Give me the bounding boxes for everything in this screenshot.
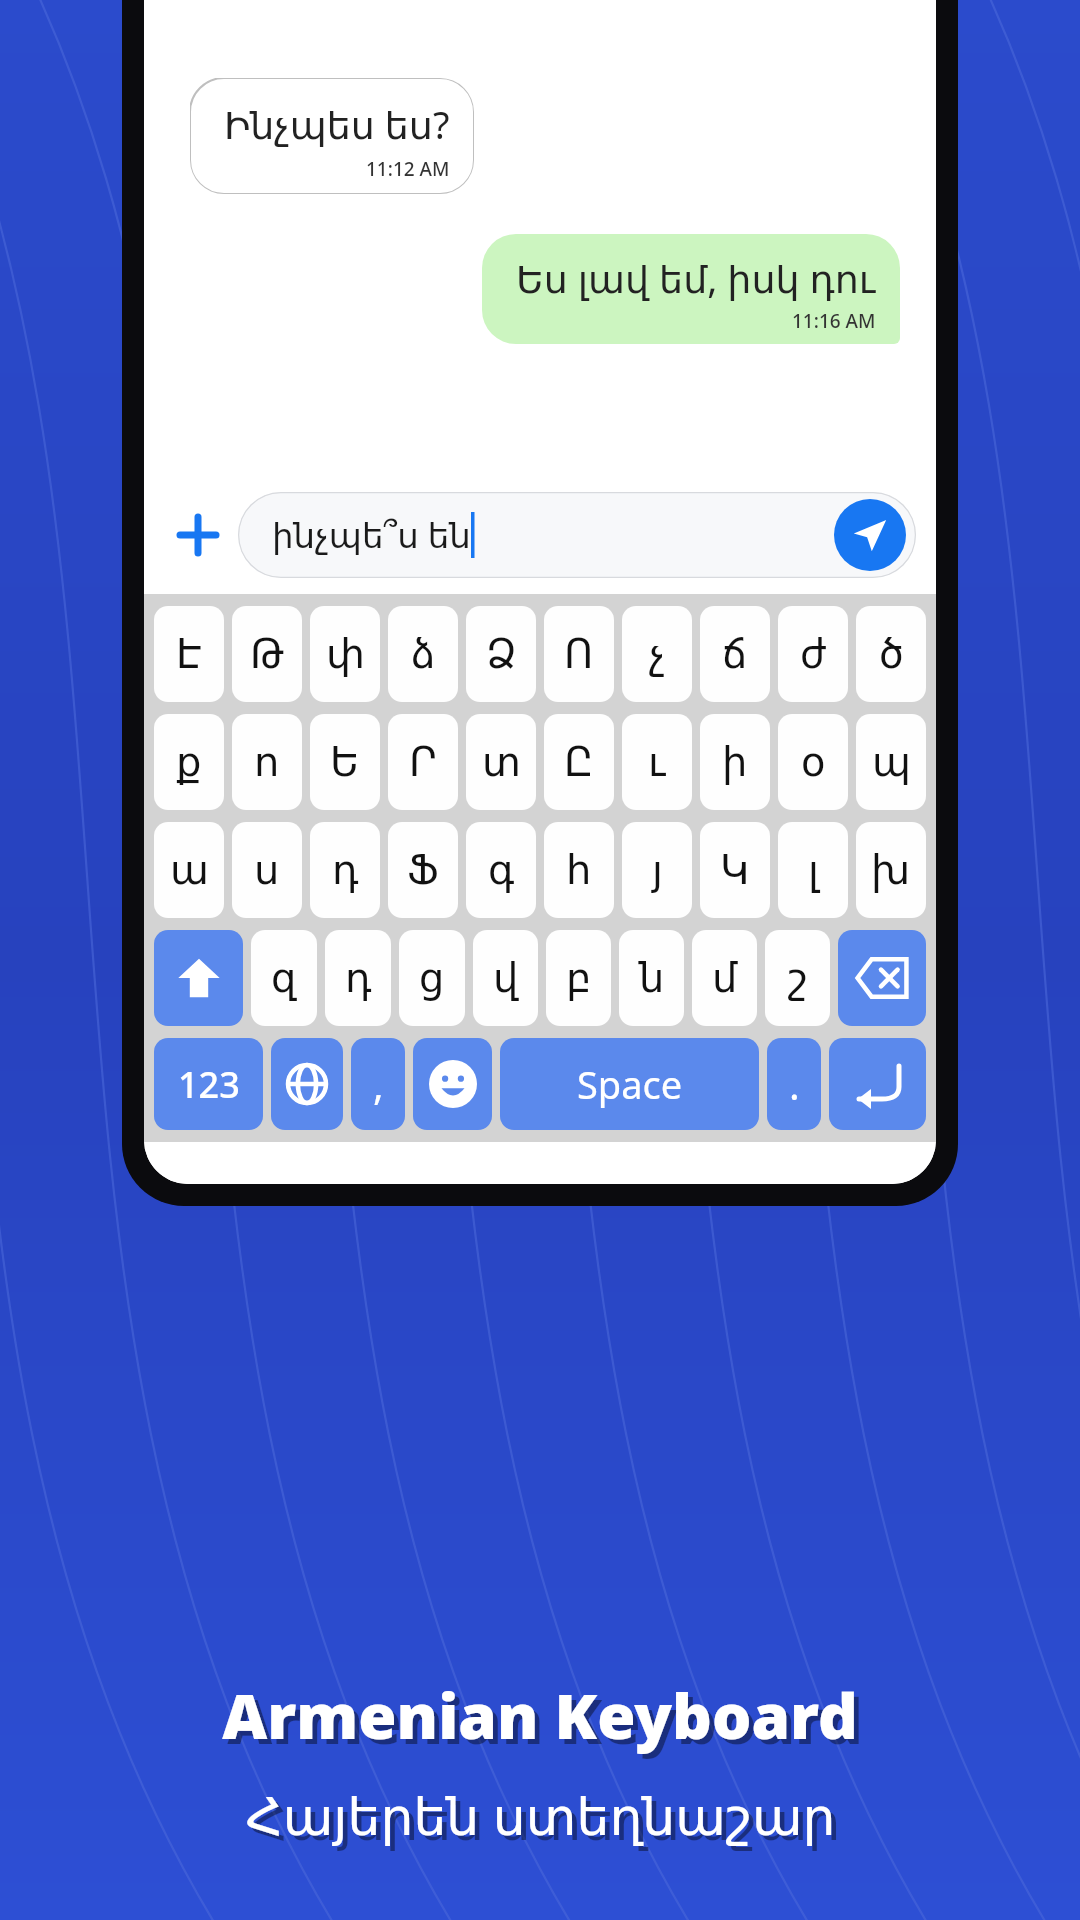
button[interactable]: Comma [351,1038,405,1130]
staticText: շ [788,955,808,1002]
staticText: ս [254,847,280,894]
button[interactable]: Ր [388,714,458,810]
button[interactable]: Ֆ [388,822,458,918]
staticText: ք [176,739,202,786]
staticText: ւ [648,739,666,786]
staticText: դ [345,955,372,1002]
staticText: ժ [800,631,827,678]
button[interactable]: ի [700,714,770,810]
button[interactable]: մ [692,930,757,1026]
staticText: լ [808,847,819,894]
staticText: բ [566,955,592,1002]
button[interactable]: պ [856,714,926,810]
staticText: չ [649,631,666,678]
staticText: Ր [409,739,437,786]
button[interactable]: ք [154,714,224,810]
staticText: Ձ [486,631,517,678]
button[interactable]: Ո [544,606,614,702]
button[interactable]: Backspace [838,930,926,1026]
button[interactable]: Send [834,499,906,571]
button[interactable]: Թ [232,606,302,702]
button[interactable]: բ [546,930,611,1026]
button[interactable]: Shift [154,930,243,1026]
staticText: Հայերեն ստեղնաշար [245,1779,836,1850]
button[interactable]: Ես լավ եմ, իսկ դու [482,234,900,344]
button[interactable]: ա [154,822,224,918]
staticText: խ [871,847,911,894]
staticText: օ [801,739,826,786]
button[interactable]: գ [466,822,536,918]
staticText: ա [170,847,209,894]
button[interactable]: յ [622,822,692,918]
button[interactable]: զ [251,930,317,1026]
button[interactable]: ձ [388,606,458,702]
staticText: հ [566,847,592,894]
staticText: զ [271,955,297,1002]
button[interactable]: Կ [700,822,770,918]
staticText: Ը [564,739,594,786]
staticText: Armenian Keyboard [227,1678,863,1762]
staticText: Հայերեն ստեղնաշար [250,1784,841,1855]
staticText: Է [176,631,202,678]
staticText: , [373,1057,384,1111]
button[interactable]: տ [466,714,536,810]
button[interactable]: շ [765,930,830,1026]
staticText: Space [577,1058,683,1110]
button[interactable]: ծ [856,606,926,702]
staticText: Ինչպես ես? [224,98,450,150]
staticText: յ [652,847,663,894]
button[interactable]: ց [399,930,465,1026]
button[interactable]: ժ [778,606,848,702]
button[interactable]: դ [310,822,380,918]
staticText: ն [639,955,665,1002]
button[interactable]: ս [232,822,302,918]
staticText: Armenian Keyboard [222,1673,858,1757]
button[interactable]: Space [500,1038,759,1130]
button[interactable]: լ [778,822,848,918]
button[interactable]: օ [778,714,848,810]
staticText: մ [712,955,738,1002]
staticText: դ [332,847,359,894]
button[interactable]: Numbers [154,1038,263,1130]
staticText: ո [254,739,280,786]
button[interactable]: ճ [700,606,770,702]
staticText: տ [482,739,521,786]
staticText: Կ [720,847,750,894]
button[interactable]: ո [232,714,302,810]
staticText: . [789,1057,800,1111]
button[interactable]: Add attachment [166,503,230,567]
staticText: ծ [879,631,904,678]
button[interactable]: ինչպե՞ս են [238,492,916,578]
staticText: ձ [411,631,436,678]
button[interactable]: Ձ [466,606,536,702]
staticText: Ես լավ եմ, իսկ դու [516,252,876,304]
button[interactable]: Ե [310,714,380,810]
button[interactable]: ն [619,930,684,1026]
button[interactable]: հ [544,822,614,918]
button[interactable]: Ինչպես ես? [190,78,474,194]
staticText: Ֆ [407,847,439,894]
staticText: վ [493,955,519,1002]
staticText: ց [419,955,445,1002]
button[interactable]: խ [856,822,926,918]
button[interactable]: վ [473,930,538,1026]
button[interactable]: չ [622,606,692,702]
staticText: Ո [564,631,594,678]
button[interactable]: Enter [829,1038,926,1130]
button[interactable]: դ [325,930,391,1026]
button[interactable]: ւ [622,714,692,810]
button[interactable]: Change language [271,1038,343,1130]
staticText: գ [488,847,515,894]
staticText: 11:16 AM [792,308,876,334]
staticText: ի [722,739,748,786]
staticText: ինչպե՞ս են [272,512,471,558]
staticText: 11:12 AM [366,156,450,182]
button[interactable]: փ [310,606,380,702]
button[interactable]: Emoji [413,1038,492,1130]
button[interactable]: Է [154,606,224,702]
staticText: փ [326,631,365,678]
button[interactable]: Period [767,1038,821,1130]
staticText: 123 [178,1060,240,1109]
button[interactable]: Ը [544,714,614,810]
staticText: Ե [330,739,360,786]
